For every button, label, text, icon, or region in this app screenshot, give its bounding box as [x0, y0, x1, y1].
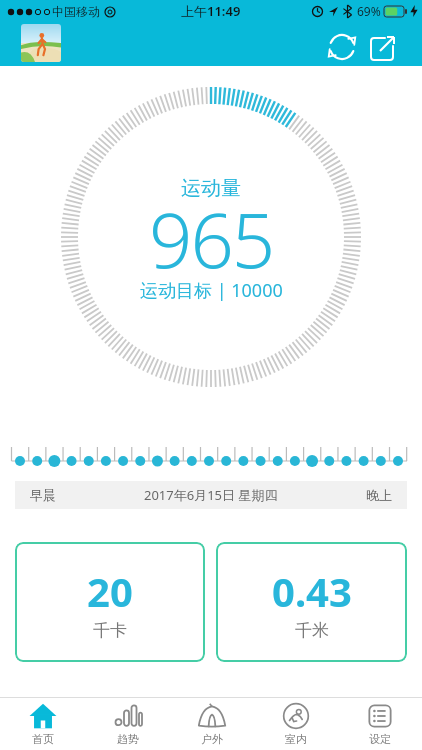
staticText: 上午11:49 [181, 2, 241, 20]
staticText: 69% [357, 3, 381, 19]
staticText: 首页 [32, 732, 54, 746]
button[interactable] [327, 32, 357, 62]
staticText: 趋势 [117, 732, 139, 746]
button[interactable]: 户外 [170, 698, 254, 750]
button[interactable] [21, 24, 61, 62]
button[interactable]: 20 [15, 542, 205, 662]
staticText: 千米 [295, 620, 329, 641]
staticText: 运动量 [181, 176, 241, 201]
button[interactable]: 早晨 [30, 481, 392, 509]
button[interactable]: 趋势 [85, 698, 170, 750]
staticText: 设定 [369, 732, 391, 746]
staticText: 20 [87, 564, 133, 618]
staticText: 中国移动 [52, 4, 100, 19]
button[interactable]: 0.43 [216, 542, 407, 662]
staticText: 千卡 [93, 620, 127, 641]
button[interactable]: 设定 [338, 698, 422, 750]
button[interactable] [367, 32, 397, 62]
button[interactable]: 首页 [0, 698, 85, 750]
staticText: 0.43 [272, 564, 352, 618]
staticText: 2017年6月15日 星期四 [144, 486, 278, 504]
button[interactable]: 室内 [254, 698, 338, 750]
staticText: 户外 [201, 732, 223, 746]
staticText: 室内 [285, 732, 307, 746]
staticText: 965 [149, 187, 274, 291]
staticText: 晚上 [366, 487, 392, 503]
staticText: 运动目标 | 10000 [140, 278, 283, 303]
staticText: 早晨 [30, 487, 56, 503]
